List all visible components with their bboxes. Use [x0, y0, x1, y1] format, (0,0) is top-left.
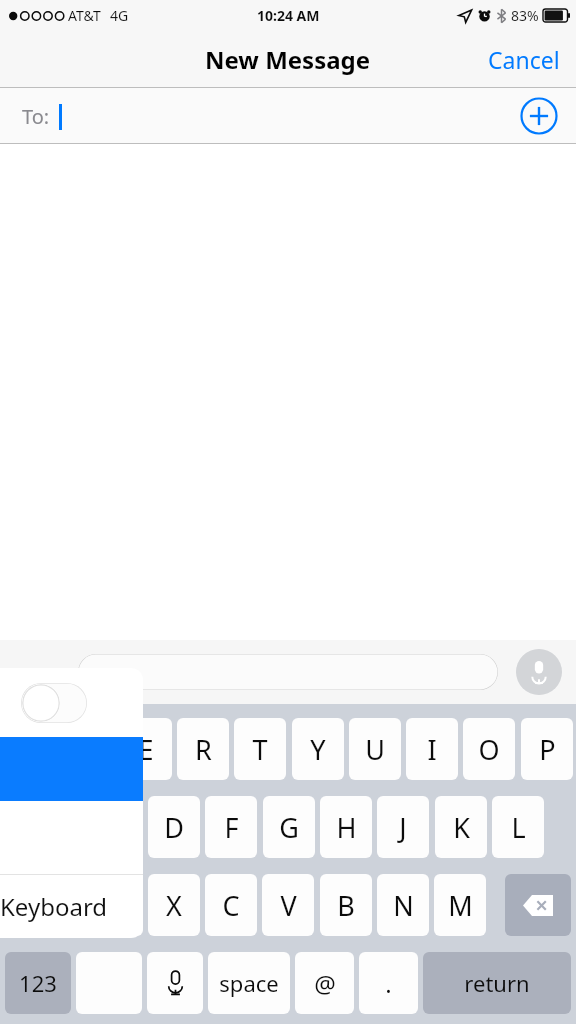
- button[interactable]: return: [423, 952, 571, 1014]
- button[interactable]: Q: [5, 718, 57, 780]
- button[interactable]: Z: [91, 874, 143, 936]
- staticText: F: [224, 809, 239, 846]
- button[interactable]: O: [463, 718, 515, 780]
- button[interactable]: B: [320, 874, 372, 936]
- button[interactable]: A: [34, 796, 86, 858]
- staticText: V: [280, 887, 297, 924]
- button[interactable]: [78, 654, 498, 690]
- button[interactable]: [5, 874, 71, 936]
- staticText: G: [279, 809, 299, 846]
- staticText: N: [393, 887, 414, 924]
- button[interactable]: C: [205, 874, 257, 936]
- button[interactable]: Emoji keyboard: [76, 952, 142, 1014]
- button[interactable]: Dictate: [516, 649, 562, 695]
- staticText: .: [385, 967, 392, 1000]
- button[interactable]: F: [205, 796, 257, 858]
- button[interactable]: Dictate: [147, 952, 203, 1014]
- button[interactable]: I: [406, 718, 458, 780]
- staticText: @: [314, 967, 336, 1000]
- button[interactable]: space: [208, 952, 290, 1014]
- button[interactable]: Backspace: [505, 874, 571, 936]
- button[interactable]: D: [148, 796, 200, 858]
- staticText: B: [337, 887, 355, 924]
- staticText: D: [164, 809, 184, 846]
- button[interactable]: R: [177, 718, 229, 780]
- staticText: Cancel: [488, 44, 560, 75]
- button[interactable]: P: [521, 718, 573, 780]
- button[interactable]: M: [434, 874, 486, 936]
- button[interactable]: V: [262, 874, 314, 936]
- staticText: X: [166, 887, 182, 924]
- button[interactable]: G: [263, 796, 315, 858]
- button[interactable]: T: [234, 718, 286, 780]
- button[interactable]: U: [349, 718, 401, 780]
- staticText: T: [252, 731, 268, 768]
- staticText: K: [453, 809, 470, 846]
- button[interactable]: K: [435, 796, 487, 858]
- button[interactable]: E: [120, 718, 172, 780]
- staticText: AT&T: [68, 6, 101, 25]
- staticText: Keyboard: [0, 890, 108, 923]
- staticText: 123: [19, 968, 57, 998]
- staticText: 4G: [110, 6, 129, 25]
- button[interactable]: S: [91, 796, 143, 858]
- button[interactable]: @: [295, 952, 354, 1014]
- staticText: O: [478, 731, 500, 768]
- staticText: U: [365, 731, 385, 768]
- button[interactable]: [0, 801, 143, 875]
- button[interactable]: N: [377, 874, 429, 936]
- button[interactable]: 123: [5, 952, 71, 1014]
- button[interactable]: Cancel: [472, 34, 576, 85]
- button[interactable]: X: [148, 874, 200, 936]
- staticText: M: [448, 887, 473, 924]
- staticText: 10:24 AM: [257, 6, 320, 25]
- button[interactable]: W: [62, 718, 114, 780]
- button[interactable]: L: [492, 796, 544, 858]
- button[interactable]: Keyboard: [0, 875, 143, 938]
- staticText: E: [138, 731, 154, 768]
- button[interactable]: .: [359, 952, 418, 1014]
- staticText: I: [427, 731, 437, 768]
- staticText: New Message: [205, 43, 371, 76]
- staticText: C: [222, 887, 240, 924]
- button[interactable]: Y: [292, 718, 344, 780]
- button[interactable]: Add contact: [520, 97, 558, 135]
- staticText: Y: [310, 731, 326, 768]
- staticText: To:: [22, 103, 50, 130]
- button[interactable]: J: [377, 796, 429, 858]
- button[interactable]: Toggle: [21, 683, 87, 723]
- staticText: return: [464, 968, 530, 998]
- staticText: H: [336, 809, 357, 846]
- button[interactable]: To:: [0, 88, 576, 144]
- staticText: R: [195, 731, 212, 768]
- staticText: J: [399, 809, 407, 846]
- staticText: W: [75, 731, 101, 768]
- button[interactable]: H: [320, 796, 372, 858]
- staticText: 83%: [511, 6, 539, 25]
- staticText: L: [511, 809, 526, 846]
- staticText: Q: [20, 731, 42, 768]
- staticText: space: [219, 968, 279, 998]
- staticText: P: [539, 731, 556, 768]
